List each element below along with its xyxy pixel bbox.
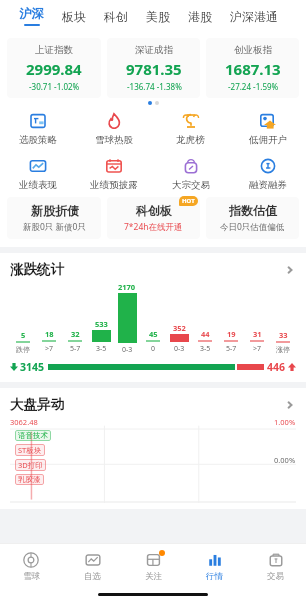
button[interactable]: 沪深 [10, 0, 53, 32]
staticText: 32 [71, 329, 80, 339]
button[interactable]: 沪深港通 [221, 0, 287, 32]
staticText: 创业板指 [234, 44, 272, 56]
staticText: 0-3 [174, 344, 185, 354]
staticText: 3D打印 [18, 460, 43, 470]
staticText: 港股 [188, 9, 212, 24]
button[interactable]: 3D打印 [15, 459, 46, 471]
staticText: 行情 [206, 571, 223, 582]
staticText: 3-5 [200, 344, 211, 354]
button[interactable]: 深证成指 [107, 38, 200, 98]
staticText: -27.24 -1.59% [228, 81, 279, 92]
staticText: 7*24h在线开通 [124, 221, 183, 233]
staticText: 大宗交易 [172, 179, 210, 191]
staticText: 低佣开户 [249, 134, 287, 146]
button[interactable]: 乳胶漆 [15, 474, 44, 485]
staticText: 选股策略 [19, 134, 57, 146]
staticText: 3-5 [96, 344, 107, 354]
button[interactable]: 港股 [179, 0, 221, 32]
staticText: 美股 [146, 9, 170, 24]
staticText: 31 [253, 329, 262, 339]
staticText: 0 [151, 344, 156, 354]
staticText: 5 [21, 330, 26, 340]
button[interactable]: 指数估值 [206, 197, 299, 239]
button[interactable]: 雪球 [0, 544, 62, 588]
staticText: 上证指数 [35, 44, 73, 56]
button[interactable]: 科创板 [107, 197, 200, 239]
staticText: 涨停 [276, 345, 290, 354]
button[interactable]: 自选 [62, 544, 123, 588]
staticText: 科创板 [136, 203, 172, 218]
staticText: HOT [182, 197, 195, 205]
button[interactable]: 创业板指 [206, 38, 299, 98]
staticText: 33 [279, 330, 288, 340]
staticText: 3062.48 [10, 417, 38, 427]
staticText: 44 [201, 329, 210, 339]
button[interactable]: 低佣开户 [229, 109, 306, 148]
staticText: 融资融券 [249, 179, 287, 191]
button[interactable]: 板块 [53, 0, 95, 32]
other: More [284, 264, 296, 276]
button[interactable]: 龙虎榜 [152, 109, 229, 148]
button[interactable]: 语音技术 [15, 430, 51, 441]
button[interactable]: 业绩预披露 [76, 154, 152, 193]
staticText: >7 [253, 344, 262, 354]
button[interactable]: 选股策略 [0, 109, 76, 148]
staticText: 大盘异动 [10, 396, 64, 413]
staticText: 龙虎榜 [176, 134, 205, 146]
staticText: 业绩表现 [19, 179, 57, 191]
staticText: >7 [45, 344, 54, 354]
staticText: 沪深 [19, 6, 44, 22]
button[interactable]: 科创 [95, 0, 137, 32]
staticText: 涨跌统计 [10, 261, 64, 278]
staticText: 沪深港通 [230, 9, 278, 24]
staticText: 0.00% [274, 455, 296, 465]
staticText: 雪球 [23, 571, 40, 582]
button[interactable]: 涨跌统计 [10, 261, 296, 278]
staticText: 业绩预披露 [90, 179, 138, 191]
button[interactable]: 交易 [245, 544, 306, 588]
staticText: 关注 [145, 571, 162, 582]
staticText: 跌停 [16, 345, 30, 354]
staticText: 乳胶漆 [18, 475, 41, 484]
staticText: -136.74 -1.38% [127, 81, 182, 92]
other: More [284, 399, 296, 411]
button[interactable]: 新股折债 [7, 197, 101, 239]
staticText: 新股折债 [31, 203, 79, 218]
staticText: 446 [267, 360, 286, 374]
button[interactable]: 上证指数 [7, 38, 101, 98]
button[interactable]: 行情 [184, 544, 245, 588]
staticText: 19 [227, 329, 236, 339]
staticText: 深证成指 [135, 44, 173, 56]
button[interactable]: 业绩表现 [0, 154, 76, 193]
staticText: -30.71 -1.02% [29, 81, 80, 92]
staticText: 2170 [118, 282, 136, 292]
button[interactable]: 雪球热股 [76, 109, 152, 148]
button[interactable]: ST板块 [15, 444, 45, 456]
button[interactable]: 大宗交易 [152, 154, 229, 193]
button[interactable]: 融资融券 [229, 154, 306, 193]
staticText: ST板块 [18, 445, 42, 455]
staticText: 语音技术 [18, 431, 48, 440]
staticText: 1687.13 [225, 59, 281, 79]
staticText: 雪球热股 [95, 134, 133, 146]
staticText: 科创 [104, 9, 128, 24]
staticText: 9781.35 [126, 59, 182, 79]
button[interactable]: 3145 [10, 360, 296, 374]
staticText: 新股0只 新债0只 [23, 221, 86, 233]
staticText: 交易 [267, 571, 284, 582]
staticText: 5-7 [226, 344, 237, 354]
button[interactable]: 大盘异动 [10, 396, 296, 413]
staticText: 3145 [20, 360, 45, 374]
staticText: 45 [149, 329, 158, 339]
staticText: 18 [45, 329, 54, 339]
staticText: 533 [95, 319, 108, 329]
staticText: 自选 [84, 571, 101, 582]
button[interactable]: 美股 [137, 0, 179, 32]
staticText: 2999.84 [26, 59, 82, 79]
staticText: 5-7 [70, 344, 81, 354]
staticText: 1.00% [274, 417, 296, 427]
staticText: 352 [173, 323, 186, 333]
staticText: 今日0只估值偏低 [220, 221, 285, 233]
staticText: 板块 [62, 9, 86, 24]
button[interactable]: 关注 [123, 544, 184, 588]
